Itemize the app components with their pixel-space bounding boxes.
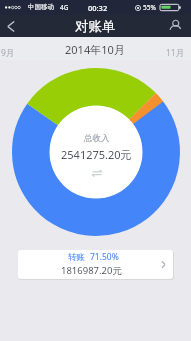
staticText: 1816987.20元 <box>61 264 122 277</box>
staticText: 转账 <box>68 252 85 263</box>
staticText: 55% <box>143 3 156 12</box>
button[interactable]: Account <box>164 15 186 37</box>
staticText: 9月 <box>1 47 15 59</box>
button[interactable]: 2014年10月 <box>47 37 143 60</box>
button[interactable]: 11月 <box>143 37 191 60</box>
staticText: 中国移动 <box>28 3 54 11</box>
staticText: 4G <box>60 3 69 12</box>
button[interactable]: 9月 <box>0 37 47 60</box>
button[interactable]: Back <box>1 15 23 37</box>
staticText: 2541275.20元 <box>61 147 132 162</box>
staticText: 71.50% <box>90 251 119 263</box>
staticText: 2014年10月 <box>65 42 125 57</box>
staticText: 对账单 <box>75 18 116 35</box>
staticText: 00:32 <box>88 3 108 13</box>
staticText: 11月 <box>166 47 185 59</box>
button[interactable]: 转账 <box>18 250 173 279</box>
staticText: 总收入 <box>84 133 110 144</box>
